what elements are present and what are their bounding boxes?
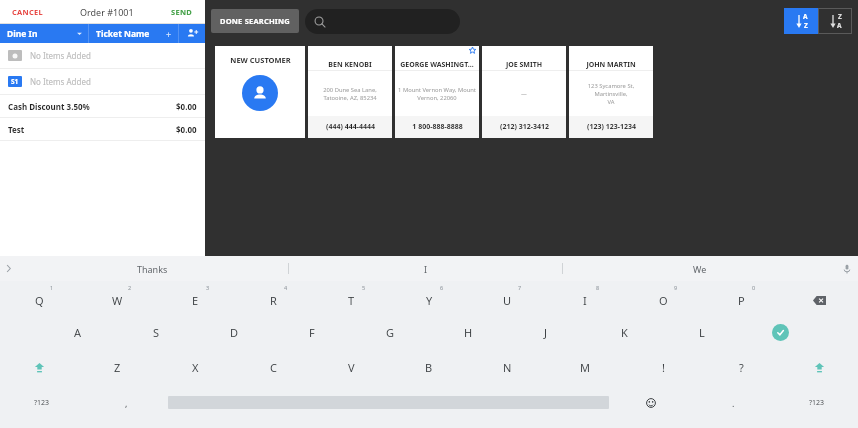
button[interactable]: JOHN MARTIN [569, 46, 653, 138]
button[interactable]: A [39, 315, 117, 350]
staticText: J [544, 325, 548, 340]
button[interactable]: Shift [0, 350, 78, 385]
button[interactable]: JOE SMITH [482, 46, 566, 138]
button[interactable]: Sort A to Z [784, 8, 818, 34]
button[interactable]: S1 [0, 69, 205, 94]
button[interactable]: SEND [169, 5, 195, 19]
staticText: 8 [596, 284, 600, 291]
button[interactable]: H [429, 315, 507, 350]
staticText: GEORGE WASHINGT… [397, 60, 477, 70]
staticText: E [192, 293, 199, 308]
button[interactable]: CANCEL [10, 5, 46, 19]
staticText: Y [426, 293, 433, 308]
button[interactable]: 2 [78, 281, 156, 315]
button[interactable]: GEORGE WASHINGT… [395, 46, 479, 138]
button[interactable]: Emoji [609, 385, 692, 420]
button[interactable]: F [273, 315, 351, 350]
staticText: We [693, 263, 707, 275]
button[interactable]: L [663, 315, 741, 350]
button[interactable]: C [234, 350, 312, 385]
button[interactable]: K [585, 315, 663, 350]
staticText: ! [662, 360, 665, 375]
staticText: Order #1001 [80, 6, 134, 18]
button[interactable]: J [507, 315, 585, 350]
button[interactable]: M [546, 350, 624, 385]
button[interactable] [305, 9, 460, 34]
staticText: 2 [128, 284, 132, 291]
button[interactable]: V [312, 350, 390, 385]
button[interactable]: DONE SEARCHING [211, 9, 299, 33]
staticText: No Items Added [30, 50, 91, 61]
staticText: F [309, 325, 315, 340]
staticText: A [803, 12, 808, 21]
staticText: 6 [440, 284, 444, 291]
button[interactable]: B [390, 350, 468, 385]
staticText: 200 Dune Sea Lane, Tatooine, AZ, 85234 [311, 86, 389, 102]
staticText: CANCEL [12, 7, 44, 17]
button[interactable]: No Items Added [0, 43, 205, 68]
button[interactable]: ! [624, 350, 702, 385]
button[interactable]: Sort Z to A [818, 8, 852, 34]
staticText: R [270, 293, 277, 308]
staticText: B [425, 360, 433, 375]
button[interactable]: 1 [0, 281, 78, 315]
button[interactable]: We [563, 256, 836, 281]
button[interactable]: ? [702, 350, 780, 385]
staticText: 123 Sycamore St, Martinsville, VA [572, 82, 650, 106]
button[interactable]: 6 [390, 281, 468, 315]
staticText: G [386, 325, 395, 340]
staticText: NEW CUSTOMER [230, 55, 291, 65]
button[interactable]: Dine In [0, 24, 88, 43]
button[interactable]: 8 [546, 281, 624, 315]
staticText: O [659, 293, 668, 308]
button[interactable]: ?123 [0, 385, 84, 420]
button[interactable]: 7 [468, 281, 546, 315]
button[interactable]: Expand [0, 256, 16, 281]
button[interactable]: Add customer [179, 24, 205, 43]
staticText: DONE SEARCHING [220, 16, 290, 26]
staticText: D [230, 325, 239, 340]
staticText: $0.00 [176, 101, 197, 112]
button[interactable]: BEN KENOBI [308, 46, 392, 138]
button[interactable]: Space [168, 385, 609, 420]
button[interactable]: Enter [741, 315, 819, 350]
staticText: ? [739, 360, 744, 375]
button[interactable]: Test [0, 118, 205, 140]
staticText: Thanks [137, 263, 168, 275]
staticText: JOHN MARTIN [571, 60, 651, 70]
button[interactable]: NEW CUSTOMER [215, 46, 305, 138]
button[interactable]: 3 [156, 281, 234, 315]
button[interactable]: Thanks [16, 256, 288, 281]
staticText: S1 [11, 77, 19, 86]
button[interactable]: Z [78, 350, 156, 385]
button[interactable]: Shift [780, 350, 858, 385]
button[interactable]: 4 [234, 281, 312, 315]
button[interactable]: S [117, 315, 195, 350]
staticText: No Items Added [30, 76, 91, 87]
staticText: V [348, 360, 355, 375]
button[interactable]: D [195, 315, 273, 350]
staticText: T [348, 293, 355, 308]
staticText: 0 [752, 284, 756, 291]
button[interactable]: Cash Discount 3.50% [0, 95, 205, 117]
button[interactable]: ?123 [775, 385, 858, 420]
button[interactable]: 0 [702, 281, 780, 315]
button[interactable]: 9 [624, 281, 702, 315]
button[interactable]: X [156, 350, 234, 385]
staticText: SEND [171, 7, 193, 17]
button[interactable]: Ticket Name [89, 24, 178, 43]
button[interactable]: N [468, 350, 546, 385]
button[interactable]: Voice input [836, 256, 858, 281]
staticText: Z [114, 360, 121, 375]
staticText: . [732, 397, 735, 409]
button[interactable]: I [289, 256, 562, 281]
staticText: W [112, 293, 123, 308]
button[interactable]: 5 [312, 281, 390, 315]
button[interactable]: G [351, 315, 429, 350]
staticText: 1 Mount Vernon Way, Mount Vernon, 22060 [398, 86, 476, 102]
staticText: A [74, 325, 82, 340]
button[interactable]: Backspace [780, 281, 858, 315]
staticText: Dine In [7, 28, 38, 40]
